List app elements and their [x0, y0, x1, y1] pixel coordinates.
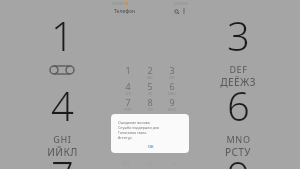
staticText: 9 [227, 148, 250, 169]
staticText: 8 [147, 96, 153, 108]
staticText: Служба поддержки для [118, 125, 160, 130]
staticText: РСТУ [225, 145, 251, 159]
staticText: 1 [125, 64, 131, 76]
staticText: 2 [147, 64, 153, 76]
staticText: JKL [148, 92, 153, 95]
button[interactable]: 4 [26, 78, 98, 159]
staticText: 9 [169, 96, 175, 108]
staticText: Голосовая связь [118, 130, 147, 135]
staticText: 5 [147, 80, 153, 92]
button[interactable]: 3 [202, 8, 274, 89]
button[interactable]: 6 [202, 78, 274, 159]
staticText: 4 [51, 78, 74, 132]
button[interactable]: 4 [118, 80, 138, 95]
button[interactable]: 8 [140, 96, 160, 111]
staticText: 6 [227, 78, 250, 132]
staticText: Агентур [118, 135, 132, 140]
button[interactable]: 2 [140, 64, 160, 79]
button[interactable]: Search [172, 7, 180, 15]
button[interactable]: More options [180, 7, 188, 15]
staticText: MNO [226, 133, 251, 145]
staticText: 6 [169, 80, 175, 92]
button[interactable]: 1 [118, 64, 138, 79]
button[interactable]: 3 [162, 64, 182, 79]
staticText: 7 [125, 96, 131, 108]
button[interactable]: 9 [162, 96, 182, 111]
staticText: 4 [125, 80, 131, 92]
staticText: GHI [53, 133, 72, 145]
staticText: DEF [229, 63, 248, 75]
staticText: 7 [51, 148, 74, 169]
staticText: ИЙКЛ [47, 145, 78, 159]
staticText: Телефон [114, 8, 136, 15]
staticText: ОК [148, 144, 154, 149]
staticText: 3 [169, 64, 175, 76]
staticText: ABC [147, 76, 153, 79]
button[interactable]: 1 [26, 8, 98, 75]
button[interactable]: 7 [118, 96, 138, 111]
button[interactable]: 9 [202, 148, 274, 169]
other: Voicemail [49, 65, 75, 75]
staticText: 1 [51, 8, 74, 62]
staticText: ДЕЁЖЗ [220, 75, 256, 89]
button[interactable]: 6 [162, 80, 182, 95]
button[interactable]: 5 [140, 80, 160, 95]
staticText: MNO [168, 92, 176, 95]
button[interactable]: 7 [26, 148, 98, 169]
staticText: WXYZ [168, 108, 176, 111]
button[interactable]: ОК [145, 143, 157, 150]
staticText: 3 [227, 8, 250, 62]
staticText: Ожидание вызова [118, 120, 150, 125]
